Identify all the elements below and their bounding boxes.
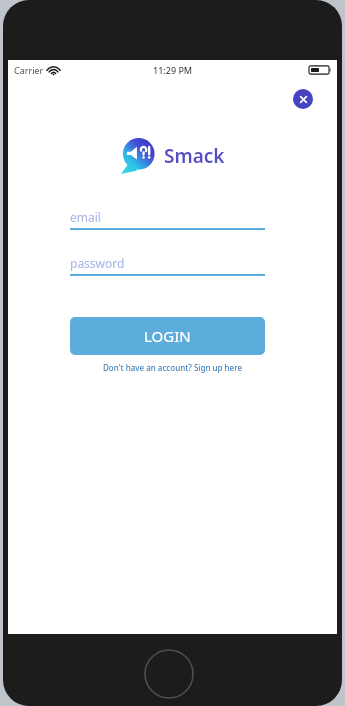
button[interactable]: LOGIN xyxy=(70,317,265,355)
staticText: LOGIN xyxy=(144,326,191,346)
button[interactable]: Close xyxy=(293,89,313,109)
button[interactable]: password xyxy=(70,252,265,274)
button[interactable]: email xyxy=(70,206,265,228)
staticText: Don't have an account? Sign up here xyxy=(103,362,243,373)
staticText: Smack xyxy=(164,143,225,169)
staticText: email xyxy=(70,209,101,225)
staticText: password xyxy=(70,255,125,271)
staticText: 11:29 PM xyxy=(153,64,193,76)
staticText: Carrier xyxy=(14,64,44,76)
button[interactable]: Don't have an account? Sign up here xyxy=(99,360,247,375)
